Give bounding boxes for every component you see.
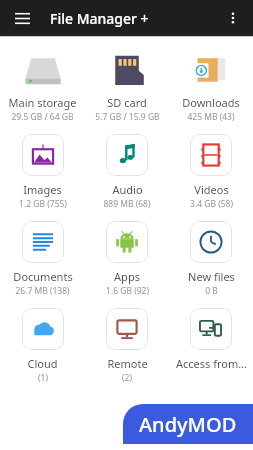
button[interactable]: SD card [85,43,169,130]
button[interactable]: Main storage [0,43,85,130]
staticText: Audio [112,182,143,197]
staticText: AndyMOD [139,411,237,438]
button[interactable]: Cloud [0,304,85,391]
staticText: New files [188,269,235,284]
button[interactable]: Apps [85,217,169,304]
button[interactable]: Downloads [169,43,253,130]
staticText: Main storage [8,95,77,110]
staticText: 3.4 GB (58) [190,198,233,210]
staticText: 0 B [205,285,218,297]
button[interactable]: Videos [169,130,253,217]
button[interactable]: Access from… [169,304,253,391]
staticText: 1.2 GB (755) [19,198,67,210]
staticText: 29.5 GB / 64 GB [11,111,74,123]
button[interactable]: Audio [85,130,169,217]
staticText: Access from… [176,356,247,371]
button[interactable]: More options [219,4,247,32]
staticText: Remote [107,356,148,371]
staticText: Documents [13,269,73,284]
staticText: Cloud [27,356,58,371]
staticText: 1.6 GB (92) [106,285,149,297]
staticText: 26.7 MB (138) [15,285,70,297]
staticText: SD card [107,95,147,110]
button[interactable]: Documents [0,217,85,304]
staticText: Videos [194,182,229,197]
button[interactable]: Images [0,130,85,217]
button[interactable]: Open navigation menu [8,4,36,32]
button[interactable]: Remote [85,304,169,391]
staticText: (2) [122,372,132,384]
button[interactable]: AndyMOD [123,404,253,444]
staticText: Downloads [182,95,240,110]
staticText: Images [23,182,62,197]
staticText: 889 MB (68) [103,198,151,210]
button[interactable]: New files [169,217,253,304]
staticText: 425 MB (43) [187,111,235,123]
staticText: (1) [38,372,48,384]
staticText: Apps [114,269,140,284]
staticText: File Manager + [50,9,149,28]
staticText: 5.7 GB / 15.9 GB [95,111,160,123]
